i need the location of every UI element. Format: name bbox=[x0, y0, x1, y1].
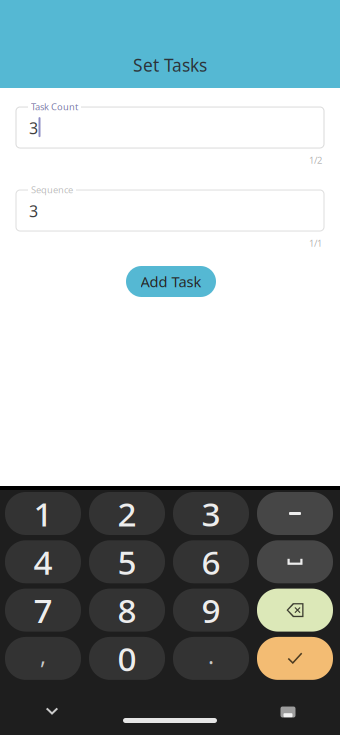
staticText: 4 bbox=[33, 540, 52, 584]
button[interactable]: 3 bbox=[173, 492, 249, 535]
button[interactable]: Space bbox=[257, 540, 333, 583]
button[interactable]: 5 bbox=[89, 540, 165, 583]
staticText: 3 bbox=[201, 491, 220, 536]
staticText: 9 bbox=[201, 588, 220, 632]
staticText: 6 bbox=[201, 540, 220, 584]
staticText: 3 bbox=[29, 117, 38, 139]
button[interactable]: Switch keyboard bbox=[270, 697, 306, 727]
staticText: 1 bbox=[33, 491, 52, 536]
button[interactable]: Add Task bbox=[126, 266, 216, 297]
button[interactable]: 1 bbox=[5, 492, 81, 535]
button[interactable]: Minus bbox=[257, 492, 333, 535]
staticText: , bbox=[40, 640, 46, 670]
button[interactable]: 9 bbox=[173, 589, 249, 632]
button[interactable]: Hide keyboard bbox=[34, 697, 70, 727]
button[interactable]: 0 bbox=[89, 637, 165, 680]
staticText: Sequence bbox=[31, 183, 73, 196]
staticText: 3 bbox=[29, 200, 38, 222]
staticText: 0 bbox=[117, 636, 136, 681]
button[interactable]: Done bbox=[257, 637, 333, 680]
staticText: Set Tasks bbox=[133, 53, 207, 76]
button[interactable]: 6 bbox=[173, 540, 249, 583]
button[interactable]: 7 bbox=[5, 589, 81, 632]
staticText: 8 bbox=[117, 588, 136, 632]
staticText: Add Task bbox=[140, 272, 201, 291]
button[interactable]: Period bbox=[173, 637, 249, 680]
staticText: 1/1 bbox=[309, 237, 322, 249]
button[interactable]: 4 bbox=[5, 540, 81, 583]
staticText: Task Count bbox=[31, 100, 78, 113]
staticText: 5 bbox=[117, 540, 136, 584]
staticText: 2 bbox=[117, 491, 136, 536]
button[interactable]: 8 bbox=[89, 589, 165, 632]
staticText: . bbox=[208, 640, 214, 670]
button[interactable]: 2 bbox=[89, 492, 165, 535]
button[interactable]: Comma bbox=[5, 637, 81, 680]
staticText: 1/2 bbox=[309, 154, 322, 166]
staticText: 7 bbox=[33, 588, 52, 632]
button[interactable]: Backspace bbox=[257, 589, 333, 632]
